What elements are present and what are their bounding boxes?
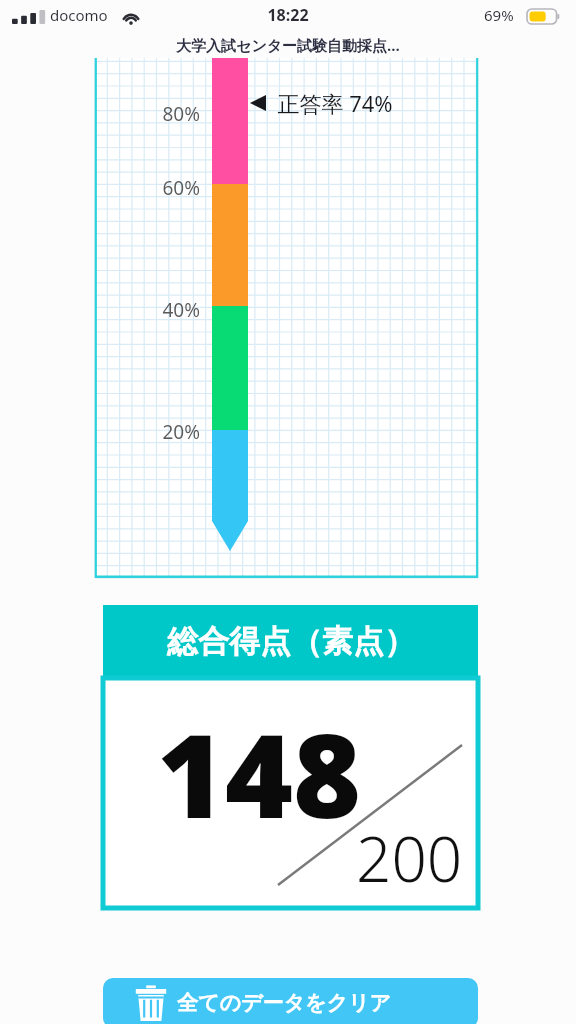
staticText: 18:22 — [0, 4, 576, 26]
staticText: 全てのデータをクリア — [177, 990, 391, 1016]
staticText: 80% — [123, 101, 200, 127]
staticText: 40% — [123, 297, 200, 323]
staticText: 148 — [157, 694, 361, 852]
button[interactable]: 全てのデータをクリア — [103, 978, 478, 1024]
button[interactable]: 総合得点（素点） — [103, 605, 478, 908]
staticText: 大学入試センター試験自動採点… — [0, 35, 576, 55]
staticText: 総合得点（素点） — [167, 622, 415, 661]
staticText: 200 — [356, 816, 463, 900]
staticText: 20% — [123, 419, 200, 445]
staticText: 69% — [484, 5, 514, 25]
staticText: 60% — [123, 175, 200, 201]
staticText: docomo — [50, 5, 108, 25]
staticText: 正答率 74% — [266, 88, 393, 118]
